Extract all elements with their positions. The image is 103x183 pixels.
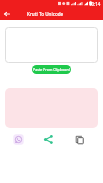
staticText: Paste From Clipboard xyxy=(33,67,70,72)
button[interactable]: Back xyxy=(0,7,13,20)
staticText: Kruti To Unicode xyxy=(27,11,64,17)
staticText: 10:14 xyxy=(89,1,101,7)
button[interactable]: Share on WhatsApp xyxy=(13,134,24,145)
button[interactable]: Copy xyxy=(74,134,85,145)
button[interactable] xyxy=(5,27,98,63)
button[interactable]: Share xyxy=(43,134,54,145)
button[interactable]: Paste From Clipboard xyxy=(32,65,71,74)
